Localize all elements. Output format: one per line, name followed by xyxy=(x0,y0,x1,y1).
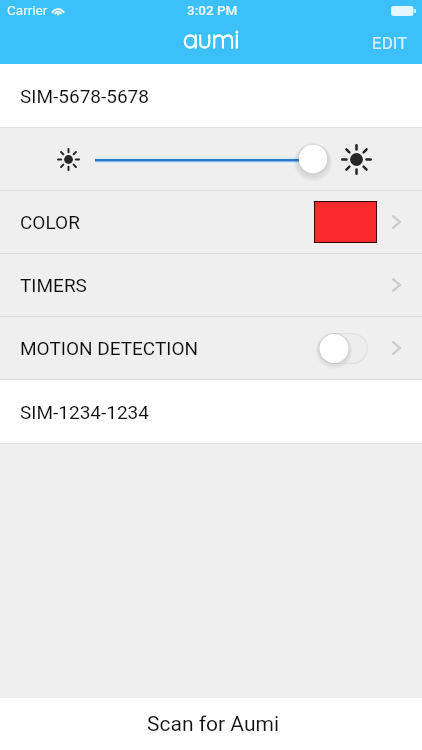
button[interactable]: SIM-1234-1234 xyxy=(0,380,422,443)
staticText: SIM-1234-1234 xyxy=(20,401,149,423)
staticText: Scan for Aumi xyxy=(147,712,279,737)
staticText: 3:02 PM xyxy=(187,2,238,18)
button[interactable]: Motion detection toggle xyxy=(319,333,368,364)
button[interactable]: TIMERS xyxy=(0,254,422,316)
staticText: EDIT xyxy=(372,33,408,53)
button[interactable]: SIM-5678-5678 xyxy=(0,64,422,127)
staticText: COLOR xyxy=(20,211,80,233)
button[interactable]: Current colour: red xyxy=(314,201,377,243)
staticText: aumi xyxy=(183,22,240,54)
button[interactable]: Brightness xyxy=(0,128,422,190)
staticText: MOTION DETECTION xyxy=(20,337,199,359)
button[interactable]: COLOR xyxy=(0,191,422,253)
staticText: SIM-5678-5678 xyxy=(20,85,149,107)
staticText: TIMERS xyxy=(20,274,87,296)
button[interactable]: MOTION DETECTION xyxy=(0,317,422,379)
button[interactable]: Scan for Aumi xyxy=(0,698,422,750)
button[interactable]: EDIT xyxy=(358,0,422,57)
staticText: Carrier xyxy=(7,2,48,18)
